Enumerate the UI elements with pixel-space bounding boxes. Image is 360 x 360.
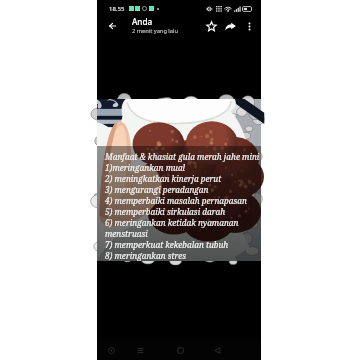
staticText: 7) memperkuat kekebalan tubuh: [105, 239, 229, 250]
button[interactable]: Back: [103, 14, 122, 38]
button[interactable]: Share: [221, 14, 240, 38]
staticText: 4) memperbaiki masalah pernapasan: [105, 195, 247, 206]
staticText: 1)meringankan mual: [105, 162, 186, 173]
staticText: 18.55: [109, 5, 125, 13]
button[interactable]: Home: [172, 338, 188, 360]
button[interactable]: Star: [202, 14, 221, 38]
staticText: 6) meringankan ketidak nyamanan: [105, 217, 239, 228]
staticText: 8) meringankan stres: [105, 250, 187, 261]
button[interactable]: More options: [240, 14, 259, 38]
staticText: menstruasi: [105, 228, 148, 239]
staticText: 3) mengurangi peradangan: [105, 184, 209, 195]
staticText: Anda: [132, 16, 153, 27]
staticText: 2 menit yang lalu: [132, 27, 178, 35]
button[interactable]: Assistant: [103, 338, 119, 360]
staticText: Manfaat & khasiat gula merah jahe mini: [105, 151, 260, 162]
staticText: 5) memperbaiki sirkulasi darah: [105, 206, 226, 217]
button[interactable]: Menu: [132, 338, 148, 360]
button[interactable]: Back: [209, 338, 225, 360]
staticText: 2) meningkatkan kinerja perut: [105, 173, 222, 184]
